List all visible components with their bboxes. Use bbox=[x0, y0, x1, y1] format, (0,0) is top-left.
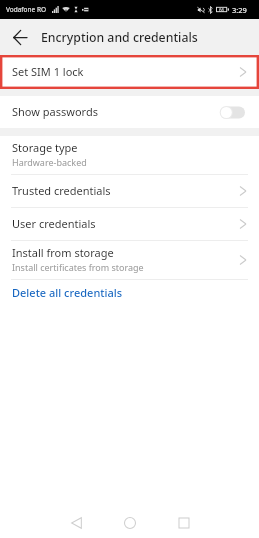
button[interactable]: User credentials bbox=[0, 208, 259, 240]
staticText: 66 bbox=[219, 7, 225, 13]
button[interactable]: Show passwords bbox=[0, 96, 259, 128]
button[interactable]: Navigate up bbox=[0, 20, 40, 55]
button[interactable]: Show passwords bbox=[220, 105, 245, 120]
button[interactable]: Delete all credentials bbox=[0, 280, 259, 304]
staticText: Vodafone RO bbox=[6, 5, 47, 14]
staticText: User credentials bbox=[12, 216, 96, 231]
staticText: Encryption and credentials bbox=[41, 29, 198, 46]
staticText: Install from storage bbox=[12, 245, 114, 260]
staticText: Storage type bbox=[12, 140, 78, 155]
button[interactable]: Storage type bbox=[0, 136, 259, 174]
button[interactable]: Trusted credentials bbox=[0, 175, 259, 207]
staticText: Trusted credentials bbox=[12, 183, 111, 198]
staticText: 3:29 bbox=[232, 5, 247, 15]
button[interactable]: Set SIM 1 lock bbox=[0, 55, 259, 89]
button[interactable]: Home bbox=[112, 505, 148, 538]
staticText: Show passwords bbox=[12, 104, 98, 119]
staticText: Hardware-backed bbox=[12, 156, 87, 168]
staticText: Install certificates from storage bbox=[12, 261, 144, 273]
button[interactable]: Install from storage bbox=[0, 241, 259, 279]
button[interactable]: Back bbox=[58, 505, 94, 538]
staticText: Set SIM 1 lock bbox=[12, 64, 84, 79]
staticText: Delete all credentials bbox=[12, 285, 123, 300]
button[interactable]: Recent apps bbox=[166, 505, 202, 538]
